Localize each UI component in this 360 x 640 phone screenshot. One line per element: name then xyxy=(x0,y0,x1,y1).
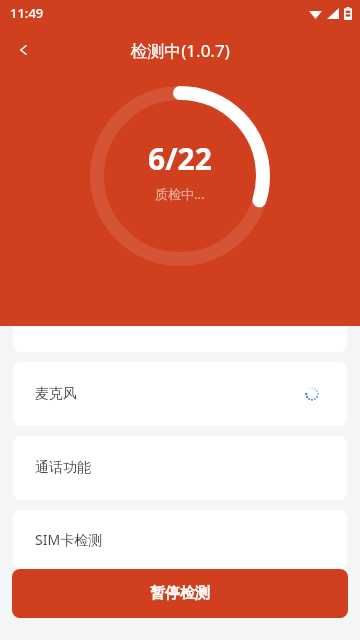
staticText: 通话功能 xyxy=(35,459,91,477)
staticText: 麦克风 xyxy=(35,385,77,403)
button[interactable]: 麦克风 xyxy=(13,362,347,426)
staticText: 暂停检测 xyxy=(150,584,210,603)
staticText: 6/22 xyxy=(148,138,212,179)
button[interactable]: SIM卡检测 xyxy=(13,510,347,569)
staticText: SIM卡检测 xyxy=(35,530,103,549)
button[interactable]: 暂停检测 xyxy=(12,569,348,618)
button[interactable]: Back xyxy=(0,26,48,74)
button[interactable]: 通话功能 xyxy=(13,436,347,500)
staticText: 检测中(1.0.7) xyxy=(130,39,230,62)
staticText: 11:49 xyxy=(10,4,44,22)
staticText: 质检中... xyxy=(155,185,205,203)
